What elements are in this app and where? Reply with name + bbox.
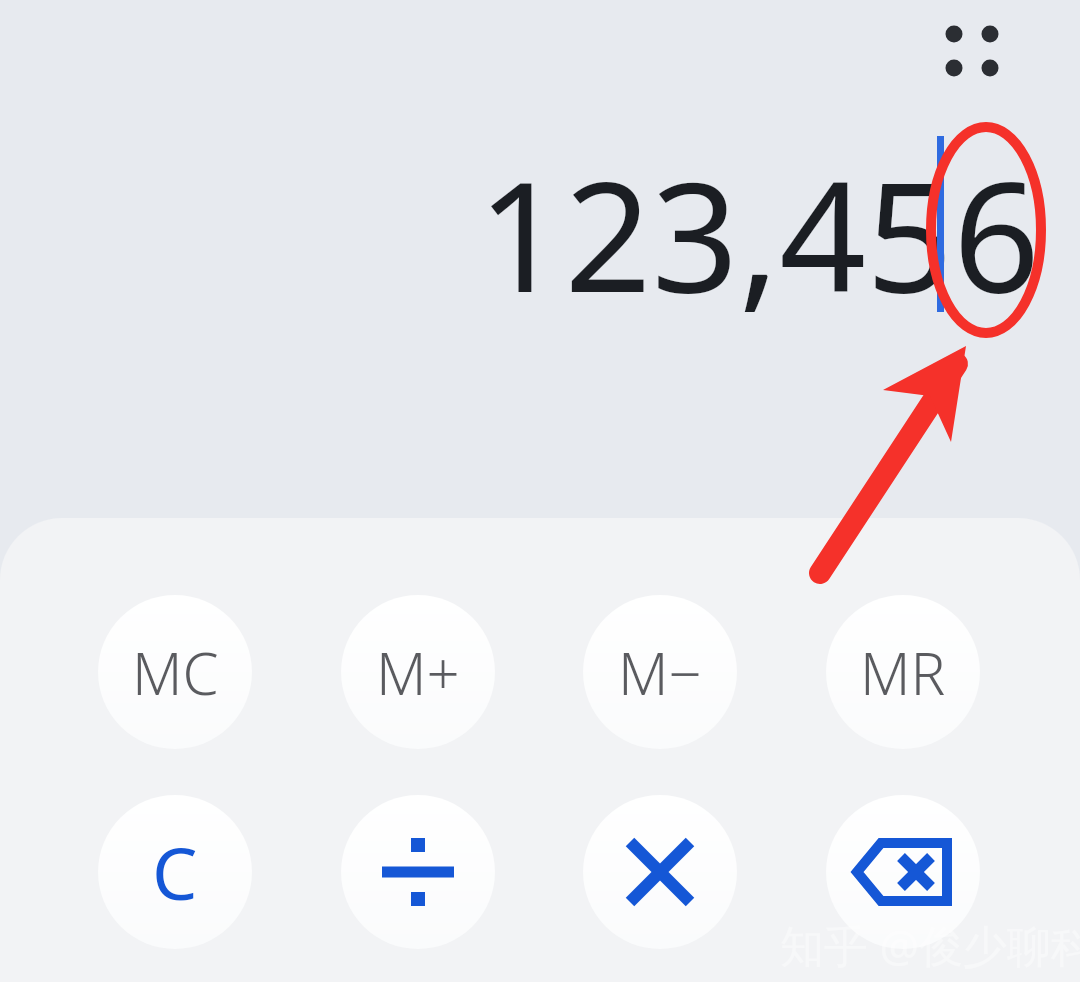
staticText: 知乎 @俊少聊科技 bbox=[780, 915, 1080, 975]
button[interactable]: 123,456 bbox=[40, 130, 1040, 320]
button[interactable]: M+ bbox=[341, 595, 495, 749]
button[interactable]: MR bbox=[826, 595, 980, 749]
button[interactable]: MC bbox=[98, 595, 252, 749]
staticText: C bbox=[152, 823, 198, 921]
button[interactable]: Divide bbox=[341, 795, 495, 949]
button[interactable]: M− bbox=[583, 595, 737, 749]
button[interactable]: C bbox=[98, 795, 252, 949]
button[interactable]: Multiply bbox=[583, 795, 737, 949]
button[interactable]: More options bbox=[926, 10, 1018, 102]
staticText: MC bbox=[132, 633, 219, 712]
staticText: 123,456 bbox=[477, 130, 1040, 320]
staticText: MR bbox=[860, 633, 946, 712]
staticText: M− bbox=[618, 633, 702, 712]
staticText: M+ bbox=[376, 633, 460, 712]
button[interactable]: Backspace bbox=[826, 795, 980, 949]
